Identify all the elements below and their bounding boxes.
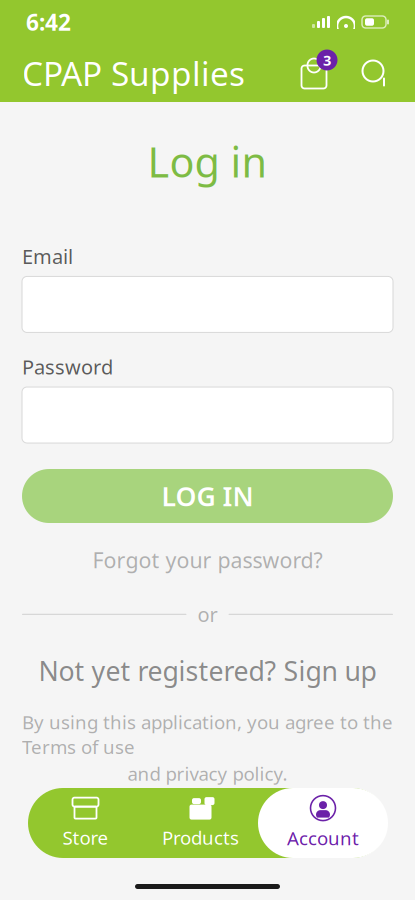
staticText: and privacy policy. [127, 761, 287, 786]
button[interactable]: Account [258, 788, 388, 858]
staticText: 3 [323, 50, 331, 70]
staticText: Not yet registered? Sign up [38, 653, 376, 688]
staticText: LOG IN [161, 478, 253, 514]
staticText: Account [287, 826, 359, 850]
staticText: Store [62, 825, 108, 850]
staticText: Products [162, 825, 239, 850]
button[interactable]: Products [143, 788, 258, 858]
staticText: CPAP Supplies [22, 51, 245, 95]
staticText: Log in [147, 134, 267, 189]
staticText: Forgot your password? [92, 546, 322, 574]
button[interactable]: Store [28, 788, 143, 858]
button[interactable]: Search [357, 55, 393, 91]
button[interactable]: LOG IN [22, 469, 393, 523]
staticText: Email [22, 243, 73, 269]
button[interactable]: Not yet registered? Sign up [22, 654, 393, 688]
button[interactable]: Cart, 3 items [293, 52, 335, 94]
staticText: or [197, 601, 217, 628]
staticText: Password [22, 353, 113, 380]
button[interactable]: Forgot your password? [22, 545, 393, 575]
staticText: 6:42 [26, 7, 71, 37]
staticText: By using this application, you agree to … [22, 710, 393, 759]
